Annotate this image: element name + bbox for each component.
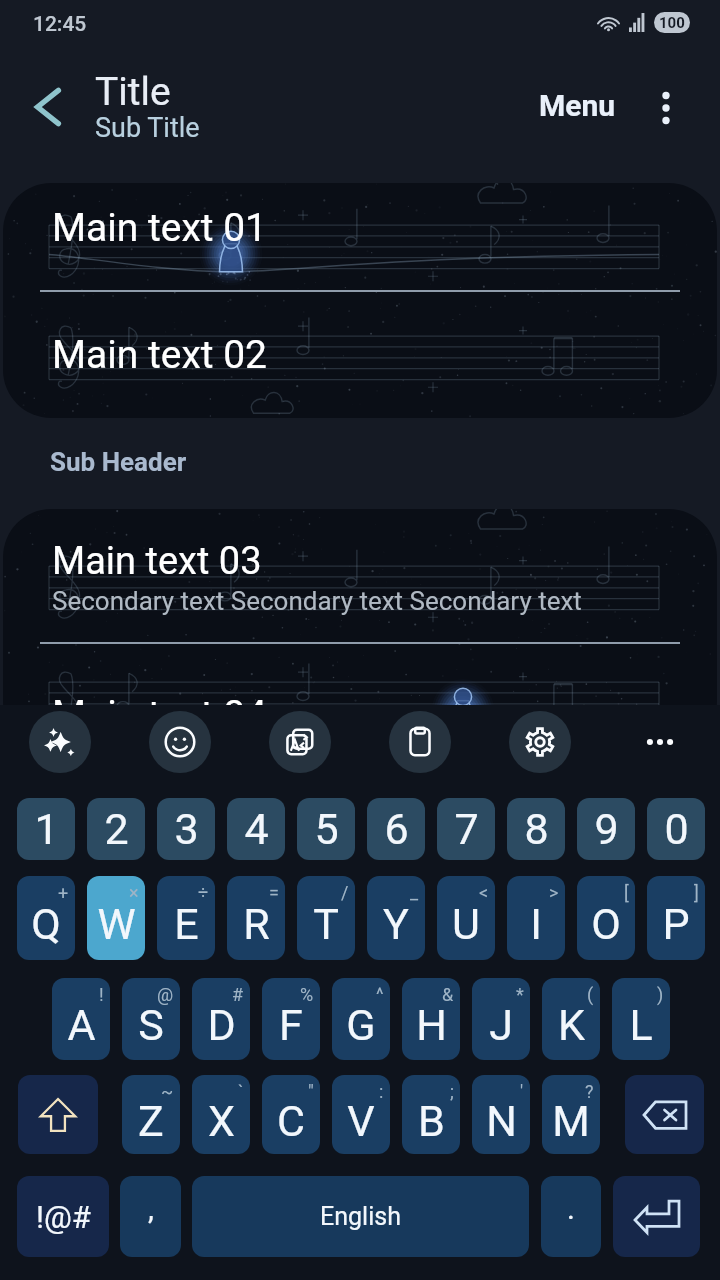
staticText: 12:45 (33, 12, 87, 37)
button[interactable]: R (227, 876, 285, 960)
button[interactable]: Main text 02 (3, 292, 717, 418)
staticText: Main text 02 (52, 332, 268, 378)
button[interactable]: Main text 01 (3, 183, 717, 291)
staticText: 1 (34, 804, 59, 854)
staticText: 3 (174, 804, 199, 854)
button[interactable]: 2 (87, 798, 145, 860)
button[interactable]: Z (122, 1075, 180, 1154)
button[interactable]: English (192, 1176, 529, 1257)
button[interactable]: 7 (437, 798, 495, 860)
button[interactable]: K (542, 978, 600, 1060)
button[interactable]: Shift (18, 1075, 98, 1154)
button[interactable]: X (192, 1075, 250, 1154)
button[interactable]: M (542, 1075, 600, 1154)
staticText: ` (238, 1081, 244, 1102)
staticText: Main text 04 (52, 692, 268, 738)
button[interactable]: 4 (227, 798, 285, 860)
button[interactable]: Main text 03 (3, 509, 717, 643)
button[interactable]: F (262, 978, 320, 1060)
staticText: + (58, 882, 69, 903)
button[interactable]: E (157, 876, 215, 960)
staticText: = (269, 882, 279, 903)
staticText: H (416, 1000, 447, 1050)
button[interactable]: W (87, 876, 145, 960)
button[interactable]: S (122, 978, 180, 1060)
staticText: ÷ (198, 882, 209, 903)
staticText: [ (624, 882, 629, 903)
staticText: U (452, 899, 480, 949)
button[interactable]: Back (19, 78, 77, 136)
button[interactable]: Main text 04 (3, 644, 717, 749)
staticText: 2 (104, 804, 129, 854)
staticText: ; (450, 1081, 454, 1102)
staticText: C (277, 1096, 305, 1146)
staticText: * (516, 984, 524, 1005)
staticText: & (442, 984, 454, 1005)
button[interactable]: 6 (367, 798, 425, 860)
staticText: R (243, 899, 270, 949)
button[interactable]: U (437, 876, 495, 960)
staticText: Sub Header (50, 447, 187, 477)
button[interactable]: P (647, 876, 705, 960)
button[interactable]: !@# (17, 1176, 109, 1257)
staticText: Q (31, 899, 61, 949)
staticText: . (567, 1191, 575, 1226)
button[interactable]: V (332, 1075, 390, 1154)
button[interactable]: 0 (647, 798, 705, 860)
button[interactable]: A (52, 978, 110, 1060)
button[interactable]: L (612, 978, 670, 1060)
button[interactable]: J (472, 978, 530, 1060)
button[interactable]: Enter (613, 1176, 700, 1257)
staticText: Title (95, 69, 171, 115)
staticText: ( (587, 984, 594, 1005)
button[interactable]: Emoji (149, 711, 211, 773)
staticText: Y (383, 899, 409, 949)
staticText: M (552, 1096, 590, 1146)
button[interactable]: Q (17, 876, 75, 960)
staticText: Sub Title (95, 112, 200, 144)
button[interactable]: C (262, 1075, 320, 1154)
staticText: ) (657, 984, 664, 1005)
staticText: < (479, 882, 489, 903)
button[interactable]: 5 (297, 798, 355, 860)
button[interactable]: B (402, 1075, 460, 1154)
button[interactable]: Y (367, 876, 425, 960)
button[interactable]: D (192, 978, 250, 1060)
button[interactable]: Settings (509, 711, 571, 773)
button[interactable]: 8 (507, 798, 565, 860)
button[interactable]: AI suggestions (29, 711, 91, 773)
staticText: 6 (384, 804, 409, 854)
staticText: B (418, 1096, 445, 1146)
staticText: W (97, 899, 136, 949)
button[interactable]: N (472, 1075, 530, 1154)
button[interactable]: Clipboard (389, 711, 451, 773)
button[interactable]: 1 (17, 798, 75, 860)
button[interactable]: I (507, 876, 565, 960)
button[interactable]: , (120, 1176, 181, 1257)
button[interactable]: O (577, 876, 635, 960)
button[interactable]: Backspace (625, 1075, 704, 1154)
staticText: A (67, 1000, 96, 1050)
staticText: × (129, 882, 139, 903)
button[interactable]: Translate (269, 711, 331, 773)
staticText: O (591, 899, 621, 949)
button[interactable]: . (541, 1176, 601, 1257)
staticText: Main text 01 (52, 205, 268, 251)
staticText: " (308, 1081, 314, 1102)
staticText: 7 (454, 804, 479, 854)
staticText: 5 (314, 804, 339, 854)
staticText: D (207, 1000, 236, 1050)
staticText: !@# (36, 1199, 91, 1235)
button[interactable]: H (402, 978, 460, 1060)
button[interactable]: Menu (529, 77, 626, 133)
button[interactable]: More (629, 711, 691, 773)
staticText: F (279, 1000, 303, 1050)
button[interactable]: 3 (157, 798, 215, 860)
staticText: T (313, 899, 339, 949)
staticText: L (629, 1000, 653, 1050)
staticText: 8 (524, 804, 549, 854)
button[interactable]: 9 (577, 798, 635, 860)
button[interactable]: G (332, 978, 390, 1060)
button[interactable]: T (297, 876, 355, 960)
button[interactable]: More options (637, 79, 695, 137)
